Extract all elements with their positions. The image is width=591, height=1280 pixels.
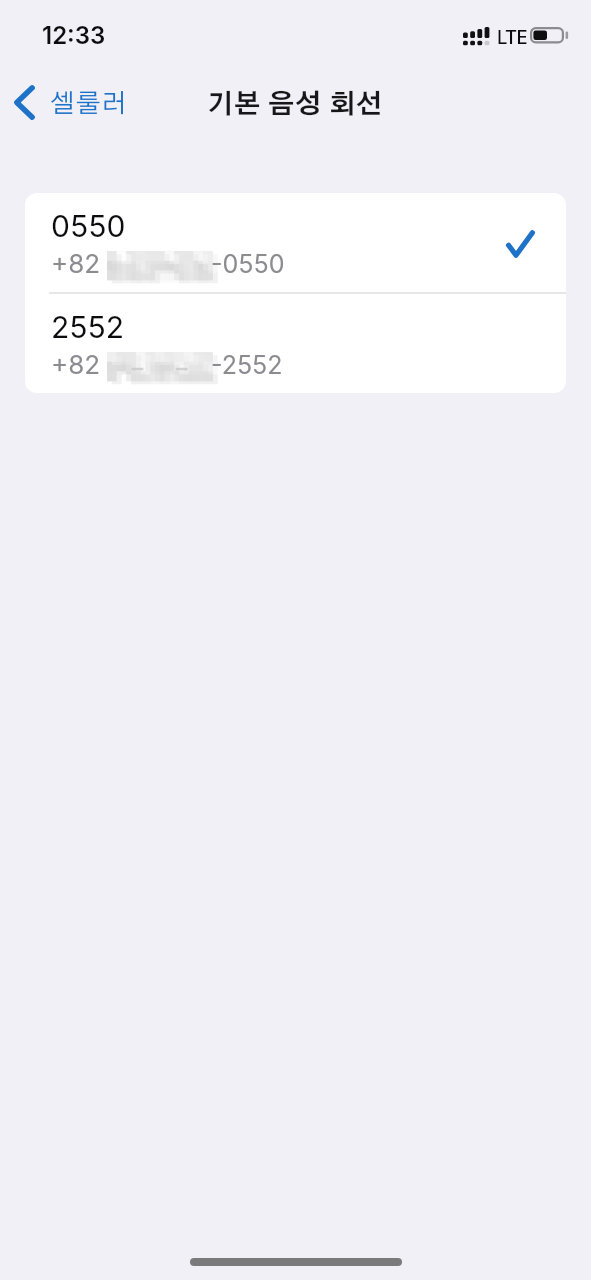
button[interactable]: 2552 xyxy=(25,294,566,393)
other: Selected line xyxy=(506,230,535,258)
button[interactable]: 0550 xyxy=(25,193,566,292)
staticText: +82 xyxy=(51,248,101,279)
staticText: 2552 xyxy=(51,309,125,345)
staticText: 셀룰러 xyxy=(50,91,128,117)
staticText: 12:33 xyxy=(42,21,106,50)
staticText: -0550 xyxy=(211,249,285,279)
staticText: 0550 xyxy=(51,208,126,244)
staticText: 기본 음성 회선 xyxy=(207,92,384,119)
staticText: LTE xyxy=(497,26,528,48)
staticText: -2552 xyxy=(211,350,283,380)
staticText: +82 xyxy=(51,349,101,380)
button[interactable]: Back to 셀룰러 xyxy=(0,82,142,129)
